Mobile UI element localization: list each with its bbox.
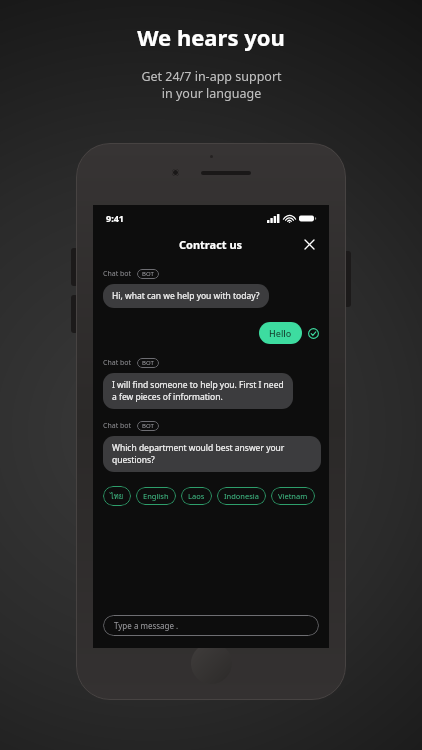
button[interactable]: Hi, what can we help you with today?: [103, 284, 269, 308]
staticText: 9:41: [106, 212, 124, 224]
staticText: Get 24/7 in-app support in your language: [141, 68, 282, 102]
button[interactable]: Which department would best answer your …: [103, 436, 321, 472]
button[interactable]: English: [136, 487, 176, 505]
staticText: BOT: [142, 270, 154, 278]
staticText: Type a message .: [114, 620, 179, 631]
staticText: English: [143, 491, 169, 501]
staticText: Chat bot: [103, 421, 132, 431]
button[interactable]: Close: [300, 235, 318, 253]
button[interactable]: Type a message .: [103, 615, 319, 636]
button[interactable]: Indonesia: [217, 487, 266, 505]
staticText: Hi, what can we help you with today?: [112, 290, 260, 302]
button[interactable]: Hello: [259, 322, 302, 344]
staticText: Chat bot: [103, 269, 132, 279]
button[interactable]: ไทย: [103, 486, 131, 506]
button[interactable]: Home: [191, 643, 232, 684]
staticText: Indonesia: [224, 491, 259, 501]
staticText: Which department would best answer your …: [112, 442, 312, 466]
staticText: Chat bot: [103, 358, 132, 368]
button[interactable]: I will find someone to help you. First I…: [103, 373, 293, 409]
staticText: BOT: [142, 422, 154, 430]
staticText: Contract us: [179, 237, 243, 252]
staticText: We hears you: [137, 22, 285, 52]
other: Delivered: [308, 328, 319, 339]
staticText: Hello: [269, 327, 292, 339]
staticText: BOT: [142, 359, 154, 367]
staticText: I will find someone to help you. First I…: [112, 379, 284, 403]
staticText: Laos: [188, 491, 205, 501]
staticText: ไทย: [110, 490, 124, 502]
button[interactable]: Vietnam: [271, 487, 315, 505]
staticText: Vietnam: [278, 491, 308, 501]
button[interactable]: Laos: [181, 487, 212, 505]
